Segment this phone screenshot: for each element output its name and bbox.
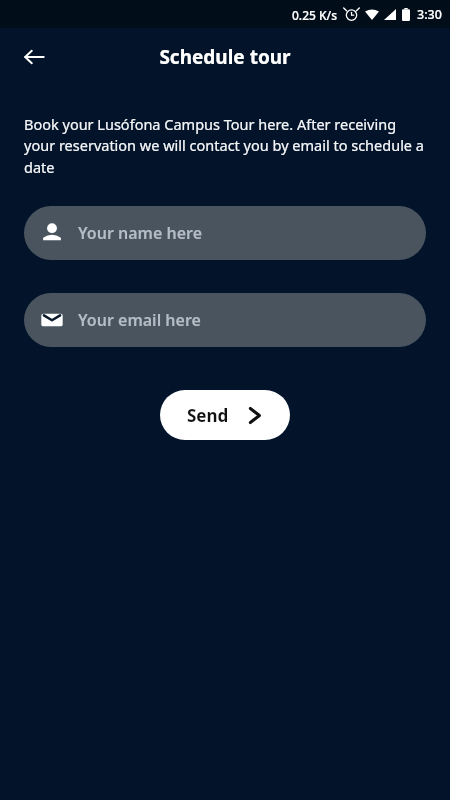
staticText: 3:30 — [417, 6, 442, 23]
button[interactable]: Your name here — [24, 206, 426, 260]
staticText: Schedule tour — [159, 44, 291, 70]
staticText: Send — [187, 404, 229, 427]
button[interactable]: Your email here — [24, 293, 426, 347]
button[interactable]: Back — [12, 35, 56, 79]
staticText: 0.25 K/s — [292, 7, 338, 23]
staticText: Your name here — [78, 222, 203, 244]
button[interactable]: Send — [160, 390, 290, 440]
staticText: Your email here — [78, 309, 201, 331]
staticText: Book your Lusófona Campus Tour here. Aft… — [24, 114, 426, 178]
